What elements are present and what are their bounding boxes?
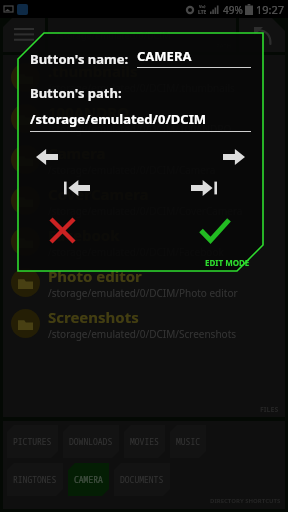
staticText: DOWNLOADS	[69, 436, 113, 447]
button[interactable]: Camera	[3, 139, 285, 180]
staticText: DIRECTORY SHORTCUTS	[210, 497, 281, 505]
staticText: Vo)	[199, 4, 206, 9]
staticText: PICTURES	[13, 436, 52, 447]
staticText: LTE	[198, 9, 207, 16]
staticText: CAMERA	[74, 474, 103, 485]
button[interactable]: RINGTONES	[7, 463, 63, 496]
button[interactable]: DOWNLOADS	[63, 425, 119, 458]
button[interactable]: Back	[239, 18, 285, 52]
button[interactable]: Menu	[3, 18, 45, 52]
button[interactable]: /storage/emulated/0/DCIM	[30, 110, 251, 128]
staticText: Button's path:	[30, 84, 122, 102]
button[interactable]: First	[60, 176, 94, 200]
button[interactable]: Confirm	[193, 210, 237, 250]
staticText: Button's name:	[30, 50, 129, 68]
staticText: .thumbnails	[48, 61, 138, 81]
staticText: /storage/emulated/0/DCIM/.thumbnails	[48, 81, 235, 95]
button[interactable]: Facebook	[3, 221, 285, 262]
staticText: 49%	[223, 3, 243, 17]
button[interactable]: Screenshots	[3, 303, 285, 344]
button[interactable]: .thumbnails	[3, 57, 285, 98]
button[interactable]: Photo editor	[3, 262, 285, 303]
staticText: /storage/emulated/0/DCIM/100ANDRO	[48, 122, 232, 136]
button[interactable]: CAMERA	[68, 463, 109, 496]
staticText: FILES	[260, 405, 279, 415]
staticText: Photo editor	[48, 266, 142, 286]
button[interactable]: 100ANDRO	[3, 98, 285, 139]
button[interactable]: CoverCamera	[3, 180, 285, 221]
staticText: /storage/emulated/0/DCIM/Screenshots	[48, 327, 237, 341]
staticText: 19:27	[256, 2, 285, 17]
button[interactable]: Cancel	[42, 210, 82, 250]
staticText: MUSIC	[176, 436, 200, 447]
staticText: RINGTONES	[13, 474, 57, 485]
staticText: /storage/emulated/0/DCIM	[56, 29, 171, 41]
button[interactable]: Next	[217, 144, 251, 170]
staticText: Camera	[48, 143, 106, 163]
button[interactable]: DOCUMENTS	[114, 463, 170, 496]
staticText: Screenshots	[48, 307, 139, 327]
button[interactable]: Previous	[30, 144, 64, 170]
button[interactable]: PICTURES	[7, 425, 58, 458]
staticText: /storage/emulated/0/DCIM/Photo editor	[48, 286, 238, 300]
staticText: DOCUMENTS	[120, 474, 164, 485]
button[interactable]: MOVIES	[124, 425, 165, 458]
button[interactable]: Last	[187, 176, 221, 200]
staticText: CoverCamera	[48, 184, 149, 204]
button[interactable]: CAMERA	[137, 47, 251, 65]
staticText: EDIT MODE	[205, 257, 250, 268]
staticText: MOVIES	[130, 436, 159, 447]
staticText: 100ANDRO	[48, 102, 130, 122]
button[interactable]: MUSIC	[170, 425, 206, 458]
staticText: Facebook	[48, 225, 120, 245]
